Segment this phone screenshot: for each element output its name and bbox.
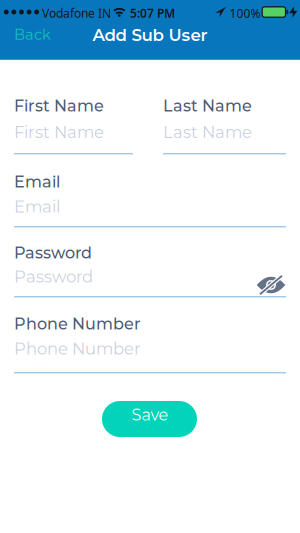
staticText: Email [14, 172, 60, 191]
staticText: Password [14, 266, 93, 286]
staticText: Phone Number [14, 314, 141, 333]
staticText: First Name [14, 96, 104, 115]
staticText: Last Name [163, 96, 252, 115]
staticText: Save [131, 405, 168, 424]
staticText: Password [14, 243, 92, 262]
staticText: 5:07 PM [130, 5, 175, 21]
staticText: First Name [14, 122, 104, 142]
staticText: Last Name [163, 122, 252, 142]
staticText: 100% [229, 5, 260, 21]
staticText: Vodafone IN [42, 5, 111, 21]
staticText: Email [14, 196, 60, 216]
staticText: Add Sub User [92, 25, 207, 45]
staticText: Phone Number [14, 338, 141, 358]
staticText: Back [14, 26, 51, 43]
